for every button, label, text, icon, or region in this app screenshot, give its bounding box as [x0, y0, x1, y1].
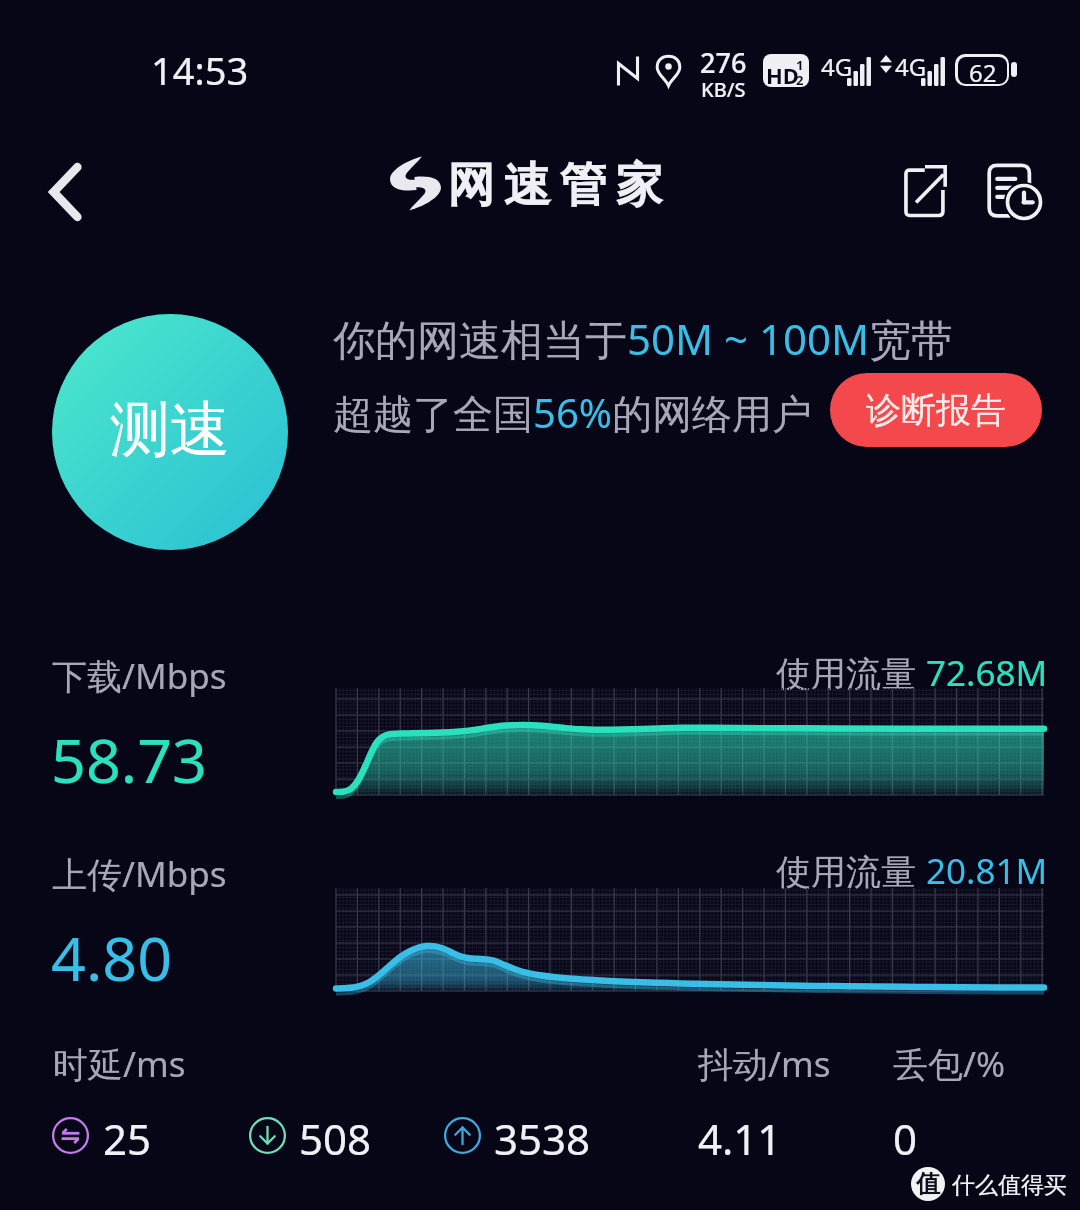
staticText: 4G [895, 50, 927, 83]
button[interactable]: Share [880, 152, 956, 228]
staticText: 抖动/ms [698, 1040, 831, 1088]
staticText: 508 [299, 1110, 372, 1167]
staticText: 25 [103, 1110, 152, 1167]
staticText: 你的网速相当于50M ~ 100M宽带 [333, 310, 954, 367]
staticText: 1 [796, 56, 804, 74]
staticText: 时延/ms [53, 1040, 186, 1088]
staticText: 超越了全国56%的网络用户 [333, 385, 812, 440]
staticText: 276 [700, 44, 747, 81]
staticText: 测速 [110, 392, 230, 468]
staticText: HD [766, 60, 799, 87]
staticText: KB/S [701, 76, 746, 103]
button[interactable]: Back [29, 156, 101, 228]
button[interactable]: 诊断报告 [830, 373, 1042, 447]
staticText: 72.68M [926, 649, 1048, 697]
staticText: 使用流量 [776, 649, 926, 697]
staticText: 什么值得买 [952, 1171, 1067, 1200]
staticText: 58.73 [51, 718, 207, 801]
staticText: 0 [893, 1110, 918, 1167]
staticText: 使用流量 [776, 847, 926, 895]
staticText: 20.81M [926, 847, 1048, 895]
staticText: 62 [969, 57, 997, 83]
staticText: 3538 [494, 1110, 591, 1167]
staticText: 上传/Mbps [52, 850, 227, 898]
staticText: 4.80 [51, 916, 173, 999]
staticText: 丢包/% [893, 1040, 1006, 1088]
button[interactable]: History [974, 152, 1050, 228]
button[interactable]: 开始测速 [52, 314, 288, 550]
staticText: 下载/Mbps [52, 652, 227, 700]
staticText: 2 [796, 71, 804, 87]
staticText: 14:53 [151, 44, 249, 96]
staticText: 4G [821, 50, 853, 83]
staticText: 诊断报告 [866, 388, 1006, 432]
staticText: 值 [916, 1169, 940, 1199]
staticText: 4.11 [698, 1110, 782, 1167]
staticText: 网速管家 [443, 156, 667, 215]
